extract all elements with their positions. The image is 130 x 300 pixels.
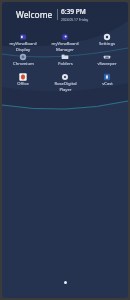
button[interactable]: Settings [86, 33, 128, 47]
button[interactable]: Folders [44, 53, 86, 67]
button[interactable]: myViewBoard Display [2, 33, 44, 52]
staticText: 6:39 PM [61, 7, 86, 16]
button[interactable]: RoseDigital Player [44, 73, 86, 92]
staticText: Chromium [13, 61, 34, 67]
staticText: RoseDigital Player [54, 81, 77, 92]
staticText: Welcome [16, 9, 53, 20]
staticText: myViewBoard Manager [51, 41, 79, 52]
staticText: 2024.05.17 Friday [61, 17, 89, 21]
staticText: vCast [102, 81, 113, 87]
staticText: myViewBoard Display [9, 41, 37, 52]
staticText: Office [17, 81, 29, 87]
button[interactable]: vCast [86, 73, 128, 87]
button[interactable]: myViewBoard Manager [44, 33, 86, 52]
button[interactable]: vSweeper [86, 53, 128, 67]
staticText: Folders [58, 61, 73, 67]
button[interactable]: Chromium [2, 53, 44, 67]
staticText: vSweeper [97, 61, 117, 67]
button[interactable]: Office [2, 73, 44, 87]
staticText: Settings [99, 41, 115, 47]
